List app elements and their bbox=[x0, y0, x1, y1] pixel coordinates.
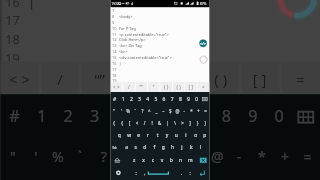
button[interactable]: Code editor screen recording bbox=[0, 0, 320, 180]
